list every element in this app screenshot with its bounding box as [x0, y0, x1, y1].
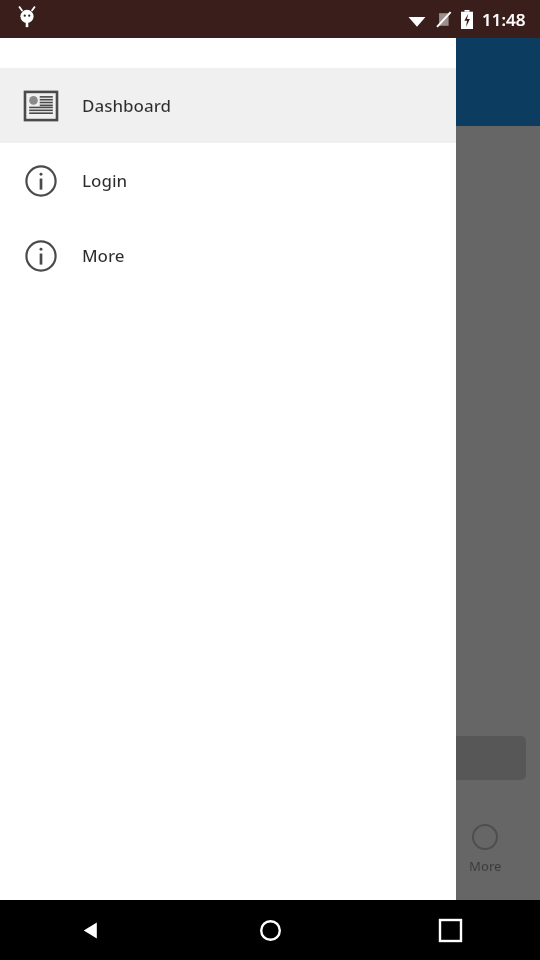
- staticText: Login: [82, 169, 128, 192]
- button[interactable]: Back: [0, 900, 180, 960]
- button[interactable]: Login: [0, 143, 456, 218]
- button[interactable]: Home: [180, 900, 360, 960]
- staticText: 11:48: [482, 8, 526, 31]
- button[interactable]: More: [0, 218, 456, 293]
- button[interactable]: Recents: [360, 900, 540, 960]
- staticText: More: [469, 857, 502, 875]
- other: Login: [25, 165, 57, 197]
- button[interactable]: More: [430, 812, 540, 886]
- other: More: [25, 240, 57, 272]
- other: Dashboard: [25, 90, 57, 122]
- staticText: Dashboard: [82, 94, 172, 117]
- staticText: More: [82, 244, 125, 267]
- button[interactable]: Dashboard: [0, 68, 456, 143]
